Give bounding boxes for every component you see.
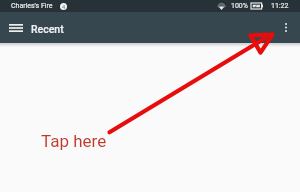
button[interactable]: Open navigation drawer xyxy=(4,12,28,43)
staticText: Recent xyxy=(31,23,64,35)
button[interactable]: More options xyxy=(275,12,297,43)
staticText: 100% xyxy=(231,2,248,10)
staticText: Tap here xyxy=(41,131,107,151)
staticText: Charles's Fire xyxy=(11,2,53,10)
staticText: 4 xyxy=(62,4,66,10)
staticText: 11:22 xyxy=(271,2,289,10)
